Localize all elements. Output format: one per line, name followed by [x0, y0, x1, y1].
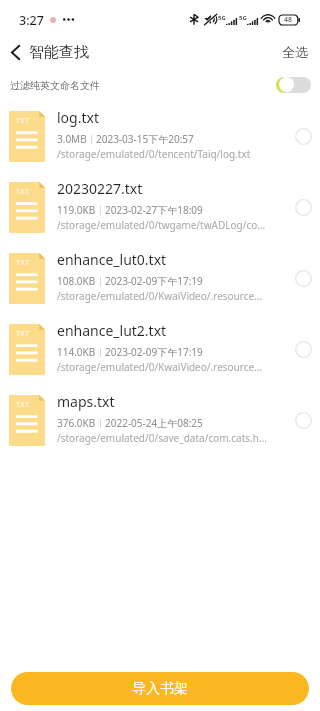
other: Select	[295, 270, 312, 287]
staticText: /storage/emulated/0/tencent/Taiq/log.txt	[57, 147, 251, 161]
staticText: TXT	[16, 258, 30, 268]
staticText: 3:27	[19, 12, 44, 29]
staticText: log.txt	[57, 108, 99, 127]
button[interactable]: 导入书架	[11, 672, 309, 705]
staticText: /storage/emulated/0/twgame/twADLog/co…	[57, 218, 266, 232]
staticText: 2023-02-09下午17:19	[105, 345, 203, 359]
button[interactable]: Filter English named files	[266, 72, 320, 98]
button[interactable]: TXT	[0, 323, 320, 394]
staticText: 导入书架	[132, 680, 188, 698]
button[interactable]: 全选	[268, 36, 320, 68]
staticText: 48	[284, 15, 293, 25]
staticText: 2023-03-15下午20:57	[96, 132, 194, 146]
button[interactable]: TXT	[0, 110, 320, 181]
button[interactable]: TXT	[0, 394, 320, 465]
staticText: 5G	[239, 14, 247, 22]
staticText: /storage/emulated/0/save_data/com.cats.h…	[57, 431, 267, 445]
staticText: enhance_lut0.txt	[57, 250, 167, 269]
staticText: TXT	[16, 187, 30, 197]
staticText: TXT	[16, 329, 30, 339]
button[interactable]: TXT	[0, 181, 320, 252]
button[interactable]: Back	[0, 36, 99, 69]
staticText: 智能查找	[29, 43, 89, 62]
staticText: /storage/emulated/0/KwaiVideo/.resource…	[57, 360, 263, 374]
other: Select	[295, 128, 312, 145]
staticText: 2023-02-09下午17:19	[105, 274, 203, 288]
staticText: 5G	[218, 14, 226, 22]
staticText: /storage/emulated/0/KwaiVideo/.resource…	[57, 289, 263, 303]
staticText: 2022-05-24上午08:25	[105, 416, 203, 430]
other: Select	[295, 199, 312, 216]
button[interactable]: TXT	[0, 252, 320, 323]
staticText: 376.0KB	[57, 416, 96, 430]
staticText: TXT	[16, 116, 30, 126]
staticText: 3.0MB	[57, 132, 87, 146]
staticText: 108.0KB	[57, 274, 96, 288]
staticText: 2023-02-27下午18:09	[105, 203, 203, 217]
staticText: 全选	[282, 44, 308, 60]
other: Select	[295, 412, 312, 429]
staticText: 20230227.txt	[57, 179, 143, 198]
staticText: enhance_lut2.txt	[57, 321, 167, 340]
staticText: 119.0KB	[57, 203, 96, 217]
staticText: 过滤纯英文命名文件	[10, 79, 100, 92]
staticText: 114.0KB	[57, 345, 96, 359]
staticText: TXT	[16, 400, 30, 410]
other: Select	[295, 341, 312, 358]
other: Back	[11, 45, 20, 60]
staticText: maps.txt	[57, 392, 115, 411]
